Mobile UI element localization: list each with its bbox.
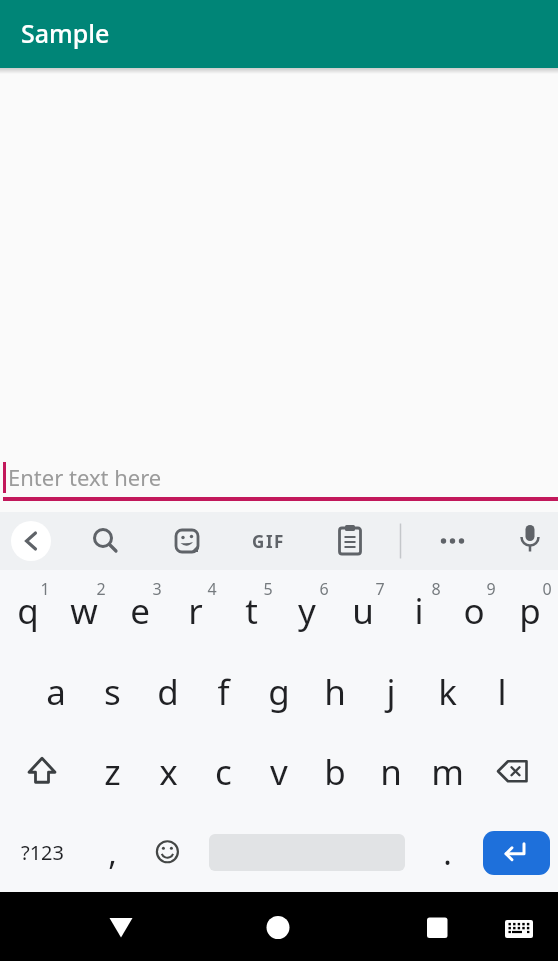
staticText: x [159,748,178,796]
button[interactable] [195,812,418,893]
staticText: 6 [319,578,329,599]
staticText: y [298,587,316,635]
button[interactable]: x [140,731,196,812]
button[interactable] [474,812,558,893]
button[interactable]: q [0,570,56,651]
staticText: GIF [252,530,285,553]
staticText: 2 [96,578,106,599]
button[interactable]: n [363,731,419,812]
staticText: , [108,831,117,875]
button[interactable] [506,517,554,565]
staticText: d [157,668,179,716]
button[interactable]: , [84,812,140,893]
staticText: c [215,748,232,796]
button[interactable]: i [391,570,447,651]
button[interactable]: b [307,731,363,812]
staticText: ?123 [21,839,64,866]
staticText: 9 [486,578,496,599]
button[interactable]: e [112,570,168,651]
button[interactable]: u [335,570,391,651]
button[interactable] [474,731,558,812]
button[interactable] [79,517,127,565]
button[interactable]: s [84,651,140,732]
button[interactable] [163,517,211,565]
button[interactable] [413,903,461,951]
button[interactable] [97,903,145,951]
staticText: s [104,668,121,716]
button[interactable] [326,517,374,565]
button[interactable] [495,903,543,951]
staticText: a [46,668,66,716]
button[interactable]: v [251,731,307,812]
button[interactable]: h [307,651,363,732]
button[interactable]: o [446,570,502,651]
button[interactable]: Enter text here [0,460,558,512]
button[interactable]: a [28,651,84,732]
staticText: 7 [375,578,385,599]
staticText: n [380,748,402,796]
staticText: . [443,831,452,875]
button[interactable] [254,903,302,951]
staticText: w [70,587,98,635]
button[interactable]: t [223,570,279,651]
staticText: v [270,748,288,796]
button[interactable]: r [167,570,223,651]
button[interactable] [244,517,292,565]
staticText: m [431,748,464,796]
staticText: i [414,587,424,635]
staticText: Sample [21,16,110,50]
staticText: k [438,668,457,716]
button[interactable]: g [251,651,307,732]
staticText: b [324,748,346,796]
staticText: 8 [431,578,441,599]
button[interactable]: l [474,651,530,732]
staticText: Enter text here [8,462,162,492]
staticText: r [188,587,203,635]
staticText: l [497,668,507,716]
button[interactable]: c [195,731,251,812]
button[interactable] [428,517,476,565]
staticText: 5 [263,578,273,599]
button[interactable]: k [419,651,475,732]
button[interactable]: ?123 [0,812,84,893]
button[interactable] [0,731,84,812]
button[interactable]: d [140,651,196,732]
button[interactable]: z [84,731,140,812]
staticText: z [104,748,121,796]
button[interactable] [7,517,55,565]
button[interactable]: y [279,570,335,651]
staticText: 1 [40,578,50,599]
staticText: h [324,668,346,716]
button[interactable] [140,812,196,893]
staticText: j [386,668,396,716]
staticText: g [268,668,290,716]
staticText: f [217,668,230,716]
button[interactable]: p [502,570,558,651]
staticText: e [130,587,150,635]
staticText: 4 [207,578,217,599]
button[interactable]: . [419,812,475,893]
staticText: 0 [542,578,552,599]
staticText: t [245,587,258,635]
staticText: 3 [152,578,162,599]
staticText: u [352,587,374,635]
button[interactable]: w [56,570,112,651]
button[interactable]: m [419,731,475,812]
button[interactable]: f [195,651,251,732]
staticText: q [17,587,39,635]
staticText: p [519,587,541,635]
staticText: o [463,587,485,635]
button[interactable]: j [363,651,419,732]
